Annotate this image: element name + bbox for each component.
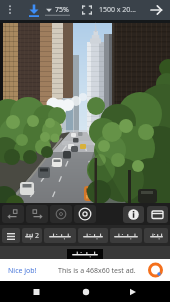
staticText: 2 (35, 231, 40, 241)
button[interactable] (78, 228, 108, 243)
staticText: 75% (55, 5, 69, 15)
staticText: 1500 x 20... (99, 5, 136, 15)
button[interactable]: Nice job! (0, 259, 170, 281)
button[interactable] (110, 228, 142, 243)
button[interactable] (144, 228, 168, 243)
button[interactable] (123, 206, 144, 223)
button[interactable] (78, 0, 96, 20)
button[interactable] (147, 206, 168, 223)
button[interactable] (44, 228, 76, 243)
button[interactable] (77, 281, 95, 302)
button[interactable] (50, 205, 72, 223)
button[interactable] (26, 205, 48, 223)
button[interactable] (44, 0, 72, 20)
button[interactable]: 2 (22, 228, 42, 243)
staticText: This is a 468x60 test ad. (58, 266, 136, 276)
button[interactable] (24, 0, 44, 20)
staticText: Nice job! (8, 266, 37, 276)
button[interactable] (146, 0, 168, 20)
button[interactable] (2, 228, 20, 243)
button[interactable] (2, 0, 18, 20)
button[interactable] (2, 205, 24, 223)
button[interactable] (74, 205, 96, 223)
button[interactable] (126, 281, 144, 302)
button[interactable] (28, 281, 46, 302)
